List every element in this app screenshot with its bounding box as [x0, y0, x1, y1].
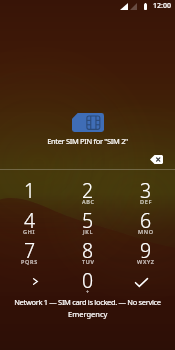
staticText: WXYZ: [137, 258, 155, 265]
staticText: TUV: [82, 258, 95, 265]
staticText: MNO: [138, 228, 154, 235]
button[interactable]: Emergency: [58, 307, 118, 321]
staticText: 9: [140, 237, 152, 264]
button[interactable]: 1: [0, 170, 59, 200]
staticText: 4: [24, 207, 36, 234]
staticText: 1: [24, 177, 36, 204]
button[interactable]: 6: [117, 200, 175, 230]
staticText: 2: [82, 177, 94, 204]
button[interactable]: 2: [59, 170, 117, 200]
button[interactable]: 9: [117, 230, 175, 260]
staticText: JKL: [83, 228, 94, 235]
button[interactable]: Confirm: [117, 260, 175, 290]
staticText: GHI: [23, 228, 36, 235]
staticText: 5: [82, 207, 94, 234]
staticText: 7: [24, 237, 36, 264]
button[interactable]: 7: [0, 230, 59, 260]
staticText: PQRS: [21, 258, 38, 265]
staticText: 8: [82, 237, 94, 264]
button[interactable]: 3: [117, 170, 175, 200]
staticText: DEF: [140, 198, 153, 205]
button[interactable]: 4: [0, 200, 59, 230]
staticText: +: [86, 288, 90, 295]
button[interactable]: 0: [59, 260, 117, 290]
button[interactable]: 8: [59, 230, 117, 260]
staticText: ABC: [82, 198, 95, 205]
staticText: 0: [82, 267, 94, 294]
button[interactable]: Delete: [150, 155, 163, 164]
button[interactable]: Next: [0, 260, 59, 290]
staticText: 3: [140, 177, 152, 204]
staticText: Enter SIM PIN for "SIM 2": [0, 136, 175, 146]
staticText: Emergency: [68, 309, 108, 319]
staticText: Network 1 — SIM card is locked. — No ser…: [0, 297, 175, 307]
staticText: 12:00: [153, 1, 171, 11]
button[interactable]: 5: [59, 200, 117, 230]
staticText: 6: [140, 207, 152, 234]
